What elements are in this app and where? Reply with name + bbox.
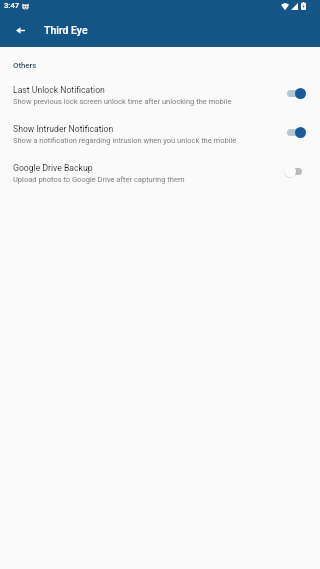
staticText: Show a notification regarding intrusion … — [13, 136, 237, 145]
staticText: Third Eye — [44, 24, 88, 36]
staticText: Others — [13, 61, 37, 70]
staticText: Last Unlock Notification — [13, 85, 105, 95]
staticText: Show Intruder Notification — [13, 124, 114, 134]
button[interactable]: Last Unlock Notification — [0, 82, 320, 118]
staticText: Show previous lock screen unlock time af… — [13, 97, 232, 106]
button[interactable]: Show Intruder Notification — [0, 121, 320, 157]
button[interactable]: Navigate up — [9, 19, 31, 41]
staticText: 3:47 — [4, 1, 20, 10]
button[interactable]: Toggle, off — [284, 165, 306, 177]
staticText: Upload photos to Google Drive after capt… — [13, 175, 185, 184]
button[interactable]: Google Drive Backup — [0, 160, 320, 196]
button[interactable]: Toggle, on — [284, 126, 306, 138]
button[interactable]: Toggle, on — [284, 87, 306, 99]
staticText: Google Drive Backup — [13, 163, 93, 173]
